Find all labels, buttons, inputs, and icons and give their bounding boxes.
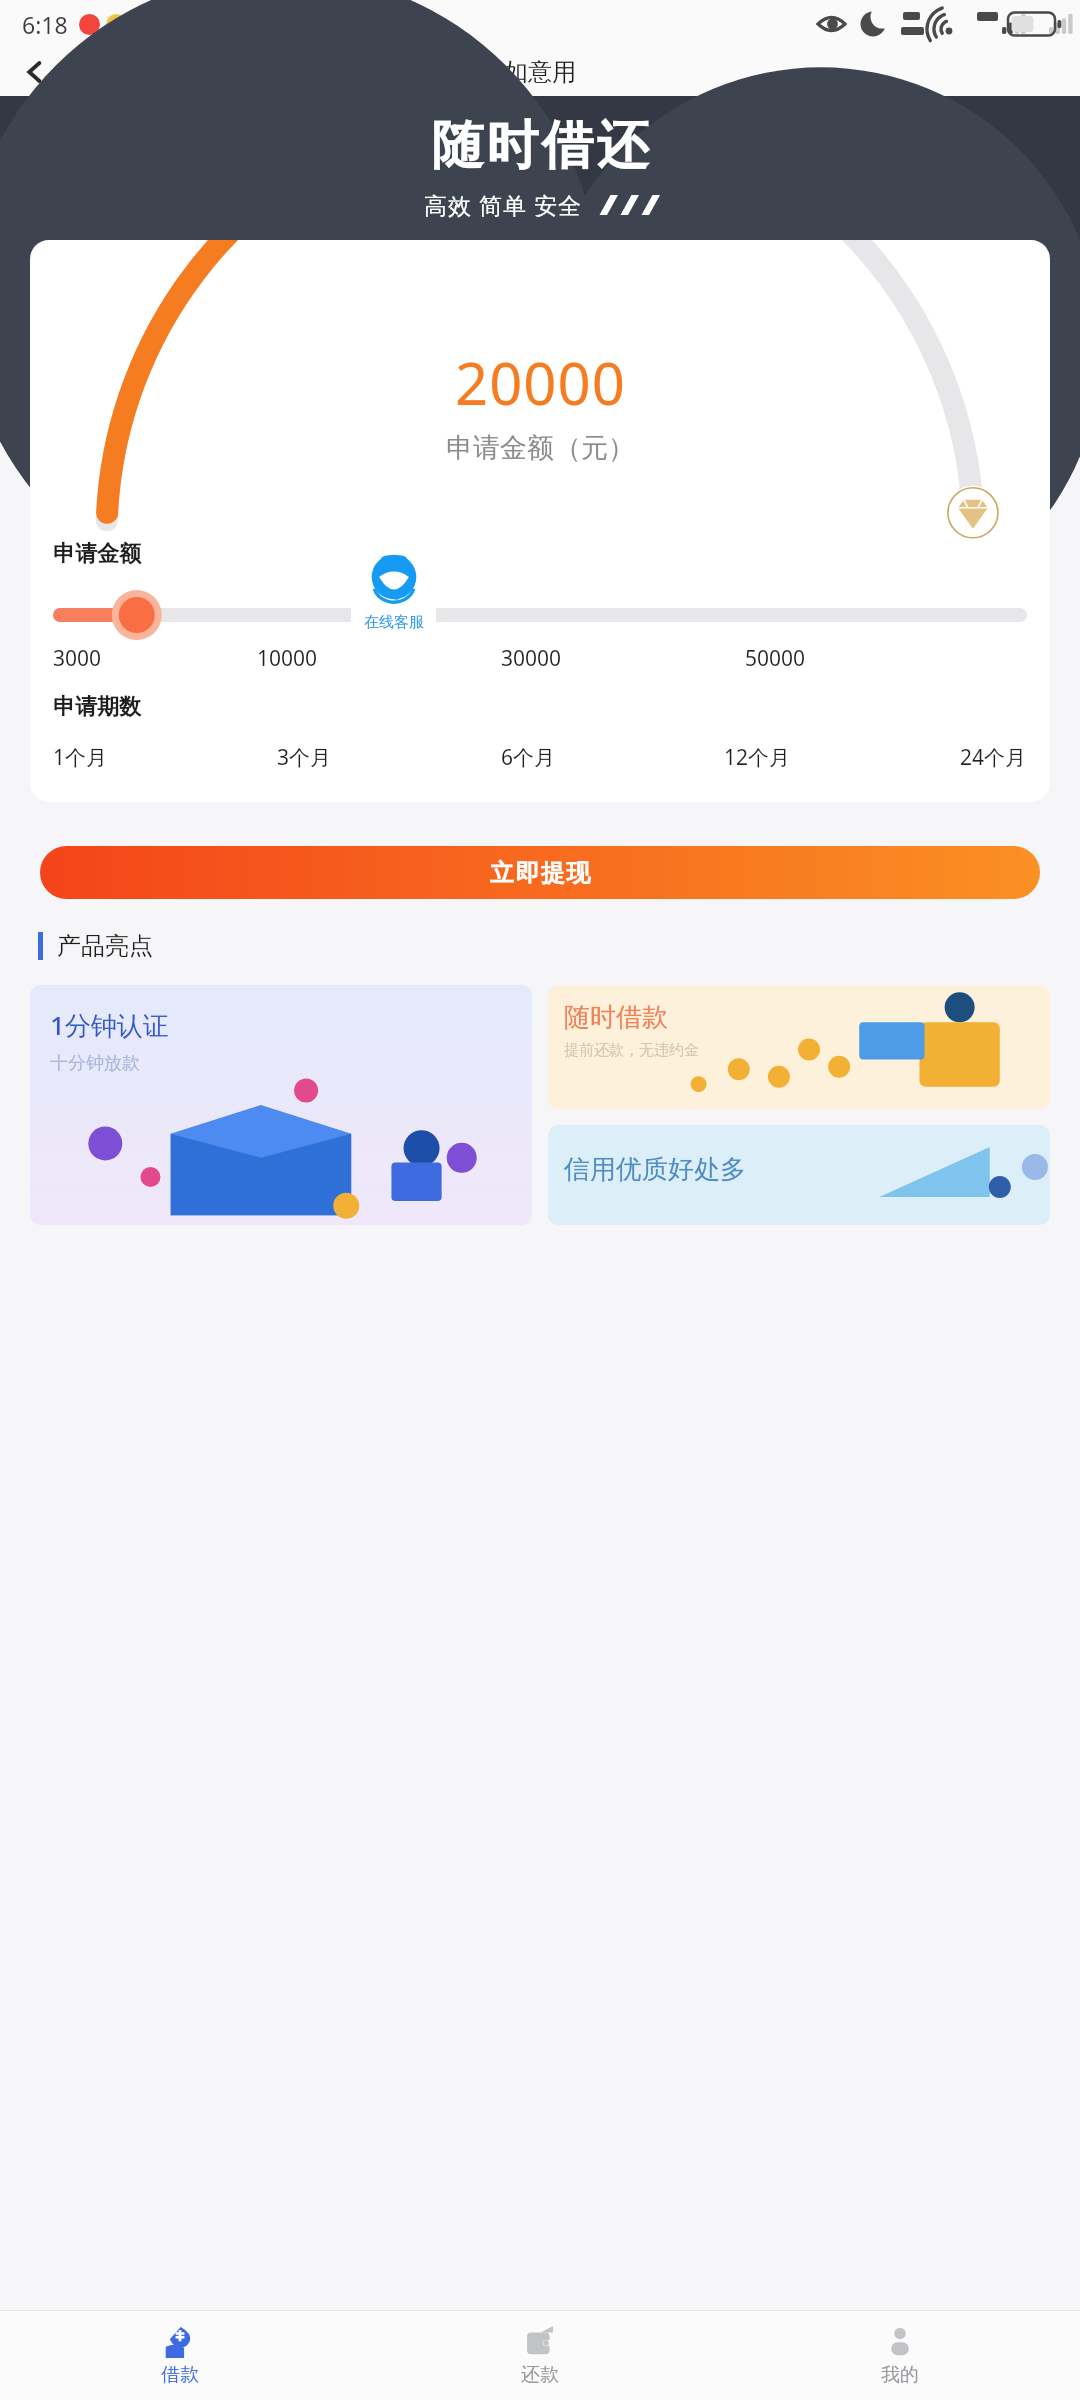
staticText: 随时借还 — [430, 113, 650, 179]
button[interactable]: 借款 — [0, 2311, 360, 2400]
button[interactable]: 我的 — [720, 2311, 1080, 2400]
staticText: 提前还款，无违约金 — [564, 1041, 699, 1060]
button[interactable]: 返回 — [9, 48, 61, 96]
staticText: 如意用 — [504, 57, 576, 87]
staticText: 1个月 — [53, 743, 108, 772]
staticText: 还款 — [521, 2363, 559, 2387]
staticText: 在线客服 — [364, 613, 424, 632]
staticText: 50000 — [745, 644, 1027, 673]
button[interactable]: 在线客服 — [351, 547, 436, 661]
button[interactable]: 随时借款 — [548, 985, 1050, 1109]
staticText: 十分钟放款 — [50, 1052, 140, 1075]
button[interactable]: 1分钟认证 — [30, 985, 532, 1225]
staticText: 申请金额 — [53, 540, 141, 568]
staticText: 产品亮点 — [57, 931, 153, 961]
staticText: 10000 — [257, 644, 501, 673]
staticText: 借款 — [161, 2363, 199, 2387]
staticText: 申请金额（元） — [446, 431, 635, 465]
button[interactable]: 3个月 — [277, 743, 332, 772]
button[interactable]: 6个月 — [501, 743, 556, 772]
staticText: 20000 — [455, 343, 626, 422]
button[interactable]: 还款 — [360, 2311, 720, 2400]
staticText: 1分钟认证 — [50, 1007, 169, 1043]
button[interactable]: 1个月 — [53, 743, 108, 772]
staticText: 我的 — [881, 2363, 919, 2387]
button[interactable]: 立即提现 — [40, 846, 1040, 899]
staticText: 6个月 — [501, 743, 556, 772]
staticText: 30000 — [501, 644, 745, 673]
staticText: 立即提现 — [489, 858, 591, 888]
button[interactable]: 信用优质好处多 — [548, 1125, 1050, 1225]
staticText: 3个月 — [277, 743, 332, 772]
staticText: 高效 简单 安全 — [424, 189, 582, 220]
button[interactable]: 12个月 — [724, 743, 791, 772]
staticText: 申请期数 — [53, 693, 141, 721]
staticText: 6:18 — [22, 9, 68, 40]
staticText: 信用优质好处多 — [564, 1153, 746, 1186]
button[interactable]: 24个月 — [960, 743, 1027, 772]
staticText: 24个月 — [960, 743, 1027, 772]
staticText: 随时借款 — [564, 1001, 668, 1034]
staticText: 12个月 — [724, 743, 791, 772]
staticText: 3000 — [53, 644, 257, 673]
